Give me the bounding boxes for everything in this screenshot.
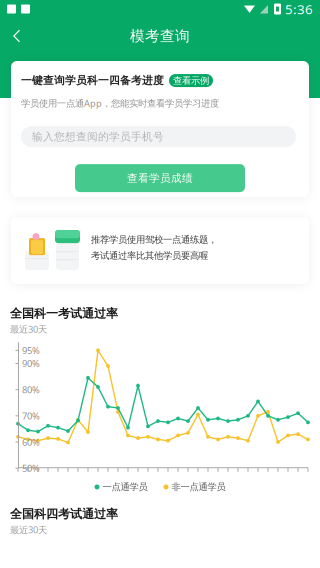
staticText: 一键查询学员科一四备考进度 [21,74,164,87]
staticText: 80% [22,383,40,396]
staticText: 学员使用一点通App，您能实时查看学员学习进度 [21,97,219,109]
staticText: 最近30天 [10,323,47,335]
staticText: 最近30天 [10,523,47,536]
staticText: 60% [22,436,40,448]
staticText: 全国科四考试通过率 [10,507,118,521]
button[interactable]: 查看学员成绩 [75,164,245,192]
staticText: 非一点通学员 [171,481,225,493]
staticText: 95% [22,344,40,356]
button[interactable]: Back [0,18,34,54]
staticText: 一点通学员 [102,481,147,493]
staticText: 考试通过率比其他学员要高喔 [91,250,208,261]
staticText: 70% [22,410,40,422]
staticText: 全国科一考试通过率 [10,306,118,321]
staticText: 查看示例 [173,75,209,86]
staticText: 模考查询 [130,27,190,45]
staticText: 90% [22,357,40,370]
staticText: 输入您想查阅的学员手机号 [32,130,164,143]
staticText: 推荐学员使用驾校一点通练题， [91,234,217,245]
staticText: 50% [22,462,40,474]
staticText: 查看学员成绩 [127,172,193,185]
staticText: 5:36 [285,0,313,18]
button[interactable]: 查看示例 [169,74,213,87]
button[interactable]: 输入您想查阅的学员手机号 [21,126,296,147]
